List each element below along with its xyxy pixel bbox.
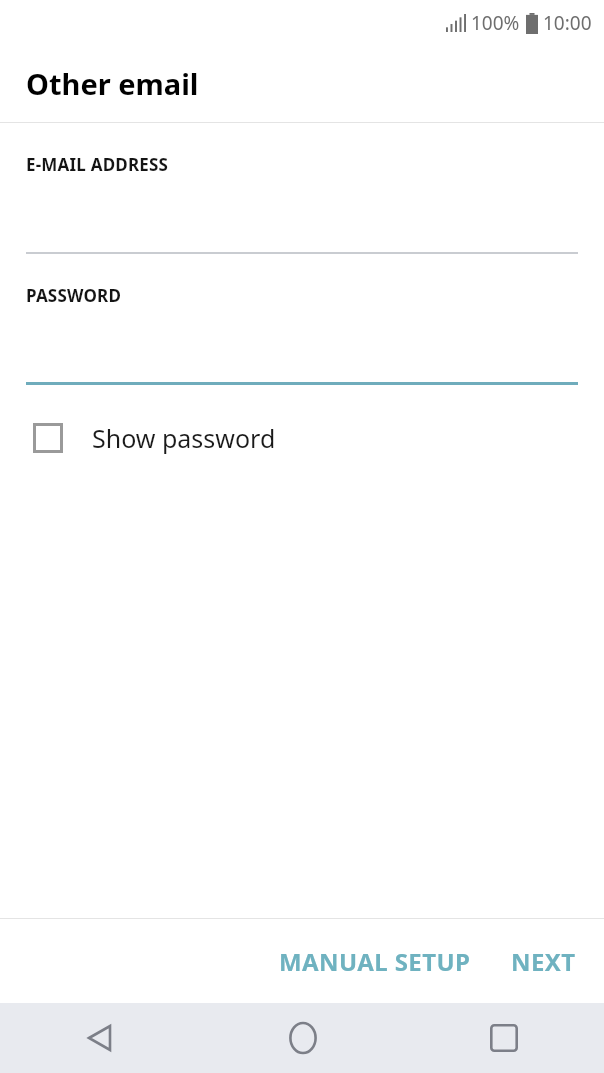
button[interactable]: NEXT	[499, 935, 588, 988]
staticText: PASSWORD	[26, 284, 122, 307]
staticText: 10:00	[543, 10, 592, 36]
staticText: E-MAIL ADDRESS	[26, 153, 169, 176]
button[interactable]: Back	[0, 1003, 202, 1073]
staticText: 100%	[471, 10, 520, 36]
button[interactable]	[0, 307, 604, 385]
staticText: Show password	[92, 421, 276, 455]
button[interactable]: Recent apps	[403, 1003, 604, 1073]
button[interactable]	[0, 176, 604, 254]
staticText: MANUAL SETUP	[279, 945, 471, 978]
button[interactable]: MANUAL SETUP	[267, 935, 483, 988]
staticText: Other email	[26, 64, 199, 103]
staticText: NEXT	[511, 945, 576, 978]
button[interactable]: Show password	[0, 407, 604, 469]
button[interactable]: Home	[202, 1003, 403, 1073]
